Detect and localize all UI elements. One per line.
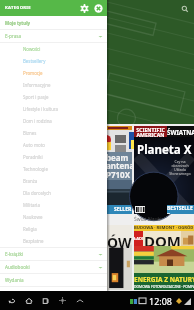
button[interactable]: Promocje <box>0 67 107 79</box>
staticText: DOMOWA FOTOWOLTAICZNE · POMPA <box>134 284 194 289</box>
staticText: Branża <box>23 178 38 184</box>
staticText: Dla dorosłych <box>23 190 51 196</box>
button[interactable]: Poradniki <box>0 151 107 163</box>
staticText: Czy na obrzeżach Układu Słonecznego <box>169 159 191 177</box>
button[interactable]: Close <box>91 1 105 15</box>
button[interactable]: Naukowe <box>0 211 107 223</box>
staticText: ŁADNY <box>134 236 143 241</box>
button[interactable]: Home <box>20 292 37 309</box>
staticText: Technologie <box>23 166 48 172</box>
staticText: KATEGORIE <box>5 5 31 11</box>
staticText: E-prasa <box>5 33 22 39</box>
button[interactable]: Settings <box>77 1 91 15</box>
staticText: Auto moto <box>23 142 45 148</box>
button[interactable]: Nowości <box>0 43 107 55</box>
button[interactable]: Dla dorosłych <box>0 187 107 199</box>
button[interactable]: Lifestyle i kultura <box>0 103 107 115</box>
staticText: Dom i rodzina <box>23 118 52 124</box>
staticText: DOM <box>144 231 181 246</box>
staticText: BUDOWA · REMONT · OGRÓD <box>134 225 194 231</box>
button[interactable]: Back <box>3 292 20 309</box>
button[interactable]: Audiobooki <box>0 261 107 273</box>
staticText: Lifestyle i kultura <box>23 106 59 112</box>
staticText: Naukowe <box>23 214 43 220</box>
staticText: SELLER <box>114 206 132 213</box>
button[interactable]: Dom i rodzina <box>0 115 107 127</box>
staticText: Religia <box>23 226 37 232</box>
staticText: Bestsellery <box>23 58 46 64</box>
button[interactable]: Sport i pasje <box>0 91 107 103</box>
button[interactable]: Auto moto <box>0 139 107 151</box>
staticText: 12:08 <box>149 295 173 307</box>
staticText: Sport i pasje <box>23 94 49 100</box>
button[interactable]: Screenshot <box>54 292 71 309</box>
staticText: beam antena P710X <box>106 152 132 180</box>
button[interactable]: Wydania <box>0 274 107 286</box>
button[interactable]: E-książki <box>0 248 107 260</box>
button[interactable]: Technologie <box>0 163 107 175</box>
button[interactable]: Moje tytuły <box>0 16 107 29</box>
staticText: Bezpłatne <box>23 238 44 244</box>
staticText: Moje tytuły <box>5 20 30 26</box>
button[interactable]: Recents <box>37 292 54 309</box>
button[interactable]: Militaria <box>0 199 107 211</box>
staticText: ÓW <box>107 233 132 252</box>
staticText: Militaria <box>23 202 40 208</box>
staticText: ENERGIA Z NATURY <box>134 275 194 284</box>
staticText: Audiobooki <box>5 264 30 270</box>
staticText: Wydania <box>5 277 24 283</box>
staticText: Informacyjne <box>23 82 51 88</box>
staticText: Promocje <box>23 70 43 76</box>
button[interactable]: Bezpłatne <box>0 235 107 247</box>
staticText: E-książki <box>5 251 24 257</box>
button[interactable]: E-prasa <box>0 30 107 42</box>
staticText: Biznes <box>23 130 37 136</box>
button[interactable]: Religia <box>0 223 107 235</box>
button[interactable]: Expand <box>71 292 88 309</box>
staticText: Planeta X <box>137 142 192 158</box>
staticText: Świat Nauki <box>134 216 162 223</box>
button[interactable]: Informacyjne <box>0 79 107 91</box>
staticText: Nowości <box>23 46 41 52</box>
button[interactable]: Search <box>179 3 190 14</box>
staticText: ŚWIATNAUKI <box>167 128 194 136</box>
staticText: SCIENTIFIC AMERICAN <box>136 126 165 137</box>
staticText: BESTSELLER <box>167 205 194 214</box>
button[interactable]: Bestsellery <box>0 55 107 67</box>
button[interactable]: Branża <box>0 175 107 187</box>
staticText: Poradniki <box>23 154 43 160</box>
button[interactable]: Biznes <box>0 127 107 139</box>
